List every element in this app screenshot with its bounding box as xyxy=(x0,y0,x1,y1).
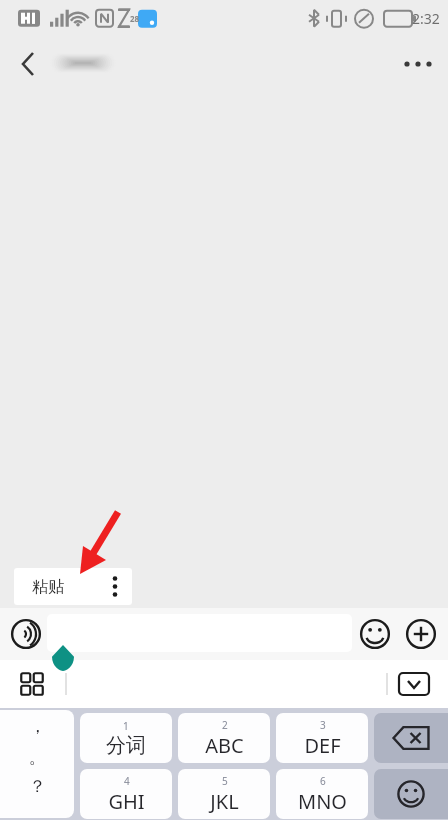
staticText: ， xyxy=(29,716,46,737)
staticText: GHI xyxy=(108,788,145,815)
staticText: DEF xyxy=(304,732,341,759)
button[interactable]: 1 xyxy=(80,713,172,763)
button[interactable]: Backspace xyxy=(374,713,448,763)
button[interactable]: 2 xyxy=(178,713,270,763)
button[interactable]: 3 xyxy=(276,713,368,763)
button[interactable]: Emoji keyboard xyxy=(374,769,448,819)
staticText: 分词 xyxy=(106,733,146,758)
staticText: 4 xyxy=(124,774,130,788)
button[interactable]: Hide keyboard xyxy=(394,664,434,704)
staticText: 5 xyxy=(222,774,228,788)
staticText: 3 xyxy=(320,718,326,732)
staticText: 28 xyxy=(130,13,140,24)
button[interactable] xyxy=(47,614,352,652)
button[interactable]: 6 xyxy=(276,769,368,819)
staticText: MNO xyxy=(298,788,347,815)
button[interactable]: 粘贴 xyxy=(14,568,132,605)
button[interactable]: Voice input xyxy=(5,613,47,655)
staticText: 2 xyxy=(222,718,228,732)
button[interactable]: Back xyxy=(6,42,50,86)
button[interactable]: Emoji xyxy=(354,613,396,655)
button[interactable]: Keyboard panel xyxy=(12,664,52,704)
staticText: 。 xyxy=(29,747,46,768)
staticText: 粘贴 xyxy=(32,577,64,597)
button[interactable]: More functions xyxy=(400,613,442,655)
button[interactable]: More options xyxy=(396,42,440,86)
staticText: 1 xyxy=(123,719,129,733)
staticText: ABC xyxy=(205,732,244,759)
button[interactable]: ， xyxy=(0,710,74,818)
staticText: JKL xyxy=(210,788,239,815)
button[interactable]: 4 xyxy=(80,769,172,819)
button[interactable]: 5 xyxy=(178,769,270,819)
staticText: ？ xyxy=(29,776,46,797)
button[interactable]: More xyxy=(98,568,132,605)
staticText: 6 xyxy=(320,774,326,788)
staticText: 2:32 xyxy=(412,9,440,28)
